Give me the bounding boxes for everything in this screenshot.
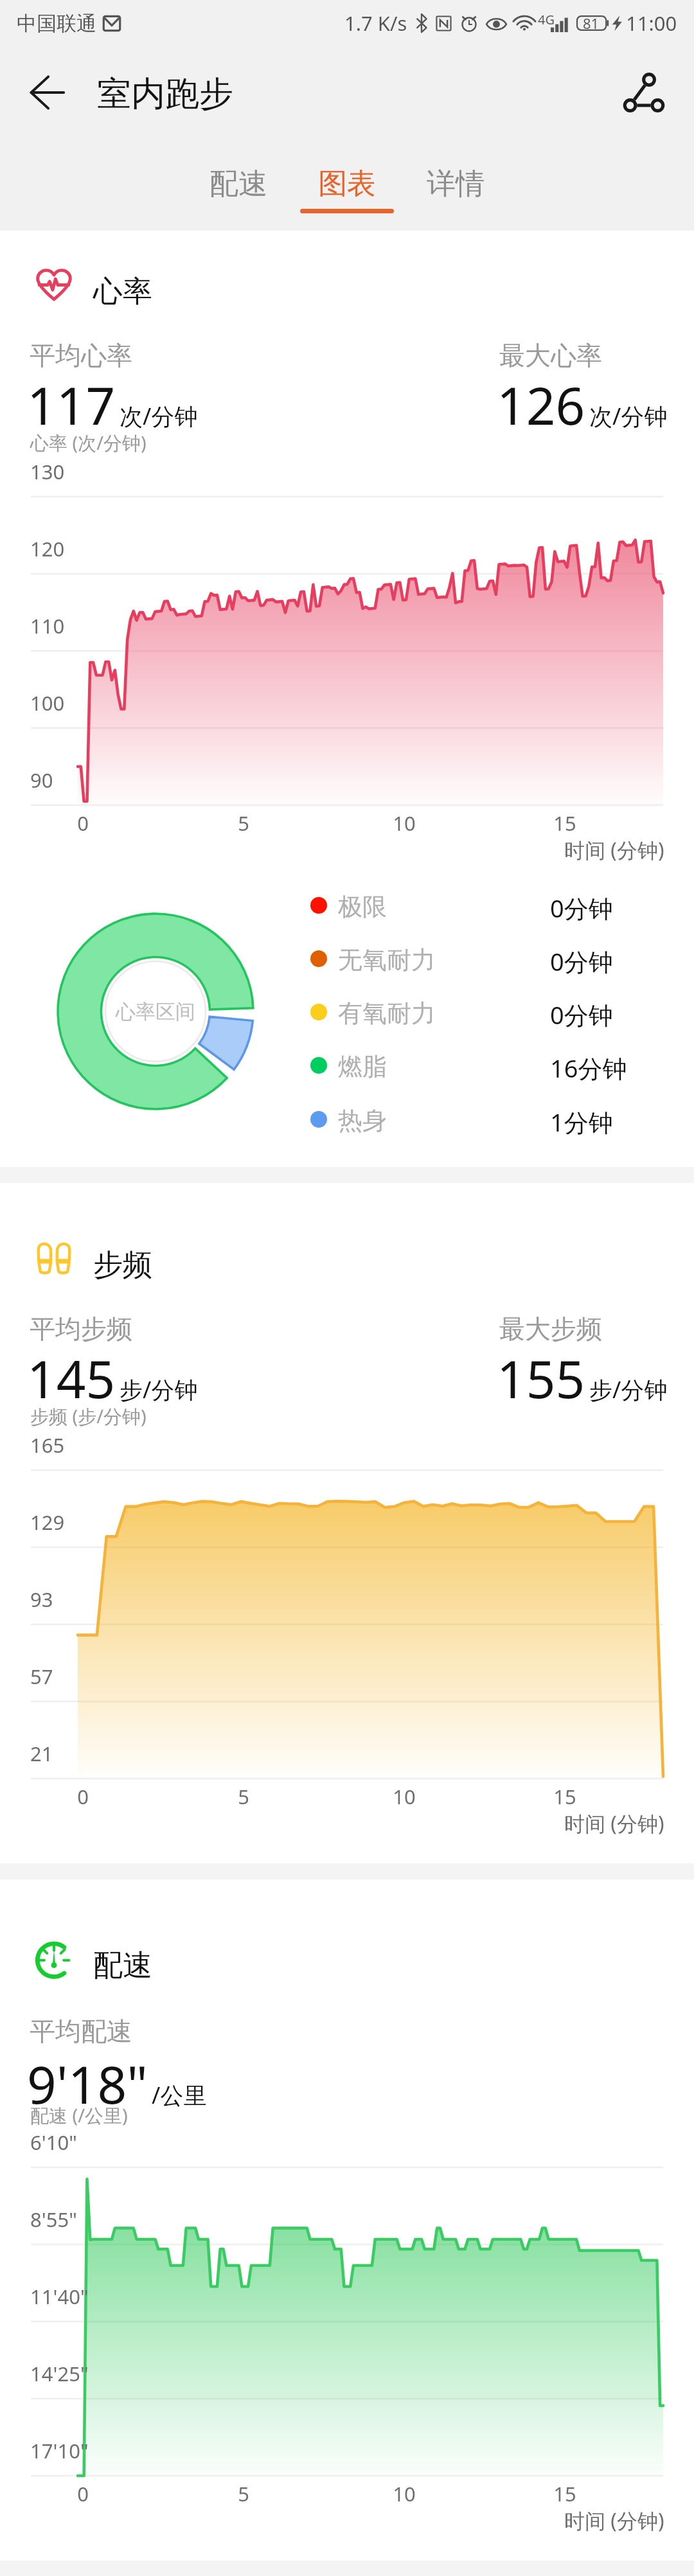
staticText: 0分钟 [550,998,613,1031]
staticText: 平均步频 [30,1313,132,1345]
staticText: 93 [30,1586,53,1613]
staticText: 165 [30,1432,65,1459]
button[interactable]: Back [9,54,86,131]
staticText: 心率 [93,273,152,310]
staticText: 16分钟 [550,1051,627,1085]
staticText: 心率 (次/分钟) [30,430,147,456]
staticText: 平均配速 [30,2015,132,2047]
staticText: 15 [539,1783,591,1810]
staticText: 时间 (分钟) [564,1809,664,1838]
staticText: 117 [27,369,116,440]
staticText: 9'18" [27,2048,148,2119]
button[interactable]: 图表 [300,166,394,224]
staticText: 0分钟 [550,891,613,925]
staticText: 5 [218,2480,269,2507]
staticText: 步频 (步/分钟) [30,1403,147,1429]
staticText: 8'55" [30,2206,77,2233]
staticText: 配速 [209,166,267,202]
staticText: 129 [30,1509,65,1536]
staticText: 126 [497,369,585,440]
staticText: 配速 [93,1947,152,1984]
staticText: 21 [30,1740,53,1767]
staticText: 6'10" [30,2129,77,2156]
staticText: 145 [27,1343,116,1413]
staticText: /公里 [152,2079,207,2111]
staticText: 14'25" [30,2360,89,2387]
staticText: 平均心率 [30,339,132,371]
staticText: 步/分钟 [120,1374,198,1405]
staticText: 5 [218,810,269,837]
staticText: 10 [378,1783,430,1810]
staticText: 130 [30,458,65,485]
staticText: 4G [538,11,555,28]
staticText: 81 [583,13,600,33]
staticText: 0分钟 [550,945,613,978]
staticText: 0 [57,2480,109,2507]
staticText: 次/分钟 [120,400,198,432]
button[interactable]: 详情 [409,166,503,224]
staticText: 时间 (分钟) [564,836,664,864]
staticText: 15 [539,810,591,837]
staticText: 热身 [338,1105,387,1136]
staticText: 155 [497,1343,585,1413]
staticText: 10 [378,810,430,837]
staticText: 中国联通 [17,11,96,36]
staticText: 110 [30,612,65,639]
staticText: 时间 (分钟) [564,2507,664,2535]
staticText: 燃脂 [338,1051,387,1082]
staticText: 15 [539,2480,591,2507]
staticText: 最大步频 [499,1313,602,1345]
staticText: 次/分钟 [589,400,668,432]
staticText: 10 [378,2480,430,2507]
staticText: 步频 [93,1247,152,1284]
staticText: 1.7 K/s [344,10,407,37]
staticText: 配速 (/公里) [30,2102,128,2128]
staticText: 0 [57,810,109,837]
staticText: 100 [30,689,65,716]
staticText: 最大心率 [499,339,602,371]
staticText: 1分钟 [550,1105,613,1139]
button[interactable]: 配速 [191,166,285,224]
staticText: 图表 [318,166,376,202]
staticText: 11:00 [626,10,677,37]
staticText: 室内跑步 [97,73,233,116]
staticText: 有氧耐力 [338,998,436,1029]
staticText: 120 [30,535,65,562]
staticText: 5 [218,1783,269,1810]
staticText: 57 [30,1663,53,1690]
staticText: 心率区间 [116,999,195,1024]
staticText: 步/分钟 [589,1374,668,1405]
staticText: 0 [57,1783,109,1810]
staticText: 11'40" [30,2283,89,2310]
staticText: 无氧耐力 [338,945,436,975]
button[interactable]: Share [605,54,682,131]
staticText: 详情 [427,166,485,202]
staticText: 极限 [338,891,387,922]
staticText: 90 [30,767,53,794]
staticText: 17'10" [30,2437,89,2464]
